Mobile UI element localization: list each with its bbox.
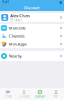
staticText: Contacts [18,95,29,98]
button[interactable]: Nearby [0,51,64,61]
button[interactable]: Chats [0,88,16,100]
staticText: ID: alex_c [10,18,21,22]
staticText: 9:41 [2,0,9,4]
staticText: Alex Chen [10,13,30,18]
staticText: ▮▮ [59,1,61,4]
staticText: Moments [9,25,26,31]
staticText: Nearby [9,53,22,59]
button[interactable]: Me [48,88,64,100]
button[interactable]: Channels [0,32,64,40]
staticText: Mini Apps [9,41,27,47]
staticText: Channels [9,33,25,39]
button[interactable]: Moments [0,24,64,32]
button[interactable]: Alex Chen [0,13,64,22]
button[interactable]: Mini Apps [0,40,64,48]
button[interactable]: Discover [32,88,48,100]
button[interactable]: Contacts [16,88,32,100]
staticText: Me [54,95,58,98]
staticText: Discover [34,95,45,98]
staticText: Discover [24,5,40,10]
staticText: Chats [4,95,11,98]
